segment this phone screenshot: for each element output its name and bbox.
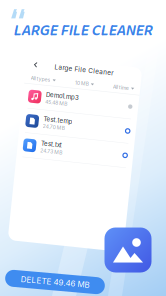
- staticText: 45.48 MB: [40, 102, 62, 108]
- button[interactable]: Test.txt: [17, 138, 133, 162]
- staticText: Large File Cleaner: [45, 66, 104, 73]
- staticText: 24.73 MB: [40, 151, 62, 157]
- button[interactable]: Demo1.mp3: [17, 89, 133, 113]
- staticText: DELETE 49.46 MB: [20, 277, 89, 287]
- staticText: LARGE FILE CLEANER: [13, 19, 152, 43]
- button[interactable]: Photos: [104, 227, 151, 272]
- button[interactable]: Test.temp: [17, 114, 133, 138]
- button[interactable]: All time: [105, 78, 128, 87]
- staticText: All time: [106, 80, 122, 86]
- staticText: 10 MB: [67, 80, 81, 86]
- button[interactable]: DELETE 49.46 MB: [5, 273, 105, 290]
- staticText: Test.txt: [40, 143, 61, 150]
- button[interactable]: 10 MB: [66, 78, 88, 87]
- staticText: Test.temp: [40, 119, 69, 126]
- staticText: Demo1.mp3: [40, 94, 73, 101]
- staticText: 24.70 MB: [40, 126, 62, 133]
- button[interactable]: All types: [22, 78, 49, 87]
- staticText: All types: [23, 80, 43, 86]
